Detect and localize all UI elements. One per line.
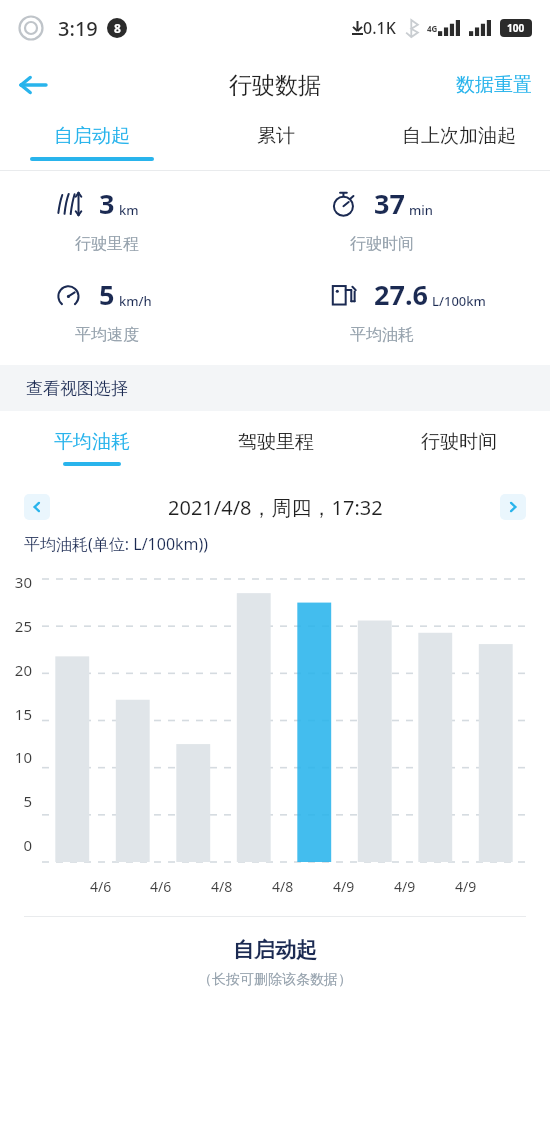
staticText: 4/8: [211, 877, 233, 896]
staticText: 4/9: [333, 877, 355, 896]
staticText: 平均油耗(单位: L/100km)): [24, 533, 209, 555]
staticText: 累计: [257, 124, 295, 148]
staticText: 0: [23, 835, 32, 855]
button[interactable]: 累计: [184, 114, 367, 170]
staticText: 3:19: [58, 15, 98, 42]
staticText: 驾驶里程: [238, 430, 314, 454]
staticText: 平均速度: [75, 325, 139, 345]
button[interactable]: 数据重置: [456, 73, 532, 97]
button[interactable]: 5: [55, 276, 275, 345]
staticText: 自启动起: [54, 124, 130, 148]
staticText: km/h: [119, 292, 152, 310]
staticText: 自启动起: [233, 937, 317, 963]
staticText: 25: [14, 616, 32, 636]
staticText: 37: [374, 185, 405, 222]
staticText: 10: [14, 747, 32, 767]
staticText: 平均油耗: [350, 325, 414, 345]
staticText: 20: [14, 660, 32, 680]
staticText: 5: [99, 276, 115, 313]
staticText: （长按可删除该条数据）: [198, 971, 352, 989]
staticText: 4/9: [455, 877, 477, 896]
button[interactable]: 平均油耗: [0, 411, 184, 485]
staticText: 自上次加油起: [402, 124, 516, 148]
staticText: 30: [14, 572, 32, 592]
button[interactable]: Back: [6, 58, 60, 112]
staticText: 查看视图选择: [26, 378, 128, 399]
staticText: 27.6: [374, 276, 428, 313]
staticText: 4G: [427, 23, 438, 34]
button[interactable]: 行驶时间: [367, 411, 550, 485]
staticText: 行驶时间: [350, 234, 414, 254]
staticText: 4/6: [90, 877, 112, 896]
staticText: 行驶数据: [229, 71, 321, 100]
staticText: 4/6: [150, 877, 172, 896]
staticText: km: [119, 201, 139, 219]
button[interactable]: Next: [500, 494, 526, 520]
staticText: L/100km: [432, 292, 486, 310]
button[interactable]: 驾驶里程: [184, 411, 367, 485]
staticText: 平均油耗: [54, 430, 130, 454]
staticText: 100: [507, 21, 525, 35]
staticText: 行驶里程: [75, 234, 139, 254]
button[interactable]: 37: [330, 185, 550, 254]
button[interactable]: 27.6: [330, 276, 550, 345]
button[interactable]: 3: [55, 185, 275, 254]
staticText: 0.1K: [363, 17, 396, 39]
staticText: 行驶时间: [421, 430, 497, 454]
button[interactable]: 自启动起: [0, 114, 184, 170]
staticText: min: [409, 201, 433, 219]
staticText: 5: [23, 791, 32, 811]
staticText: 3: [99, 185, 115, 222]
staticText: 8: [114, 20, 121, 36]
staticText: 4/9: [394, 877, 416, 896]
staticText: 15: [14, 704, 32, 724]
staticText: 数据重置: [456, 73, 532, 97]
staticText: 4/8: [272, 877, 294, 896]
button[interactable]: 自上次加油起: [367, 114, 550, 170]
staticText: 2021/4/8，周四，17:32: [168, 494, 383, 521]
button[interactable]: Previous: [24, 494, 50, 520]
